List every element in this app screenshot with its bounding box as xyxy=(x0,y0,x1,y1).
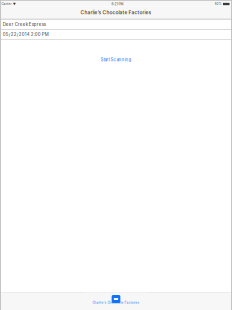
button[interactable]: Start Scanning xyxy=(90,39,141,68)
staticText: Charlie's Chocolate Factories xyxy=(80,10,151,15)
staticText: Deer Creek Express xyxy=(3,22,46,27)
staticText: 05/22/2014 2:00 PM xyxy=(3,32,49,37)
staticText: 6:21 PM xyxy=(111,2,123,6)
staticText: Start Scanning xyxy=(100,57,131,62)
button[interactable]: Charlie's Chocolate Factories xyxy=(85,293,147,310)
staticText: 92% xyxy=(215,2,222,6)
staticText: Charlie's Chocolate Factories xyxy=(92,301,139,304)
staticText: Carrier xyxy=(1,2,11,6)
